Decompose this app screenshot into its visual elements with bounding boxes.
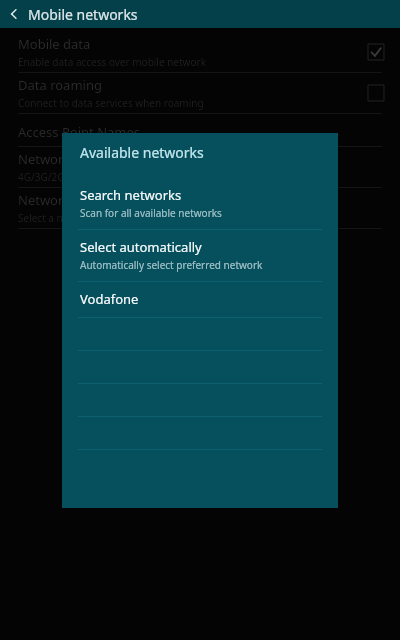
staticText: Scan for all available networks — [80, 206, 222, 220]
staticText: 4G/3G/2G — [18, 170, 65, 184]
staticText: Select automatically — [80, 238, 202, 256]
button[interactable]: Data roaming — [368, 85, 384, 101]
staticText: Network mode — [18, 191, 110, 209]
staticText: Search networks — [80, 186, 182, 204]
button[interactable]: Mobile data — [368, 44, 384, 60]
button[interactable]: Search networks — [62, 178, 338, 229]
staticText: Vodafone — [80, 290, 139, 308]
button[interactable]: Access Point Names — [0, 118, 400, 146]
staticText: Network operators — [18, 150, 134, 168]
button[interactable]: Vodafone — [62, 282, 338, 317]
button[interactable]: Network mode — [0, 188, 400, 228]
button[interactable]: Mobile data — [0, 32, 400, 72]
staticText: Mobile data — [18, 35, 91, 53]
button[interactable]: Data roaming — [0, 73, 400, 113]
staticText: Mobile networks — [28, 5, 138, 24]
staticText: Available networks — [80, 143, 204, 162]
staticText: Data roaming — [18, 76, 102, 94]
staticText: Enable data access over mobile network — [18, 55, 206, 69]
staticText: Connect to data services when roaming — [18, 96, 204, 110]
staticText: Access Point Names — [18, 123, 141, 141]
staticText: Automatically select preferred network — [80, 258, 263, 272]
button[interactable]: Network operators — [0, 147, 400, 187]
staticText: Select a network mode — [18, 211, 126, 225]
button[interactable]: Back — [0, 0, 28, 28]
button[interactable]: Select automatically — [62, 230, 338, 281]
